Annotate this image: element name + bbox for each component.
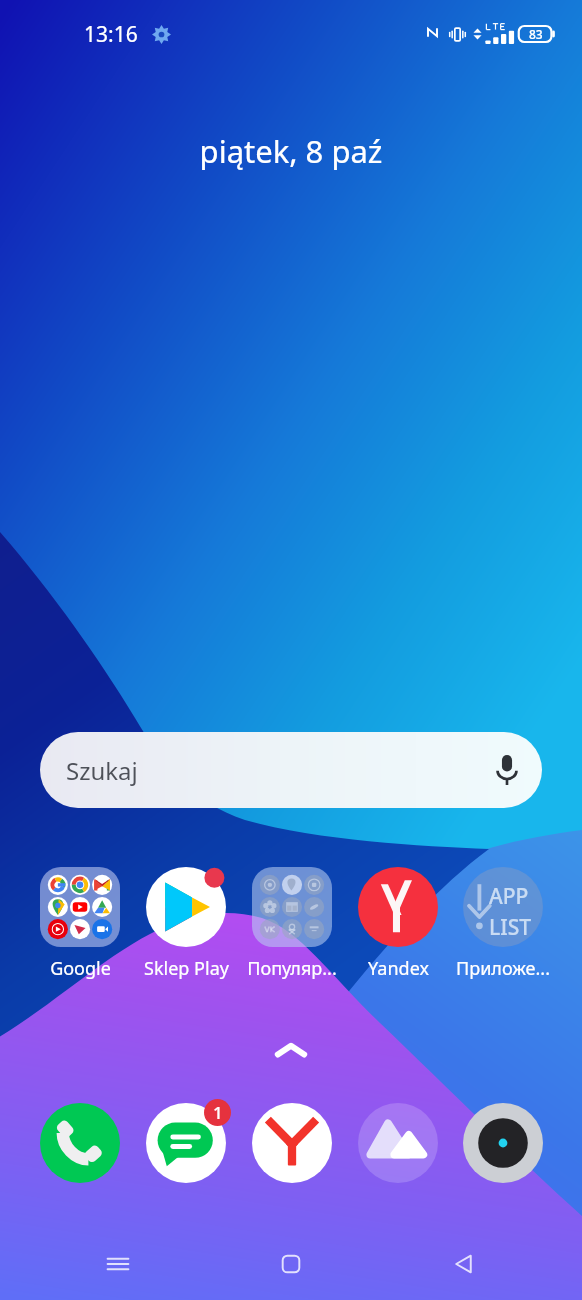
button[interactable]: Recents [63, 1234, 173, 1294]
staticText: 13:16 [84, 20, 138, 49]
staticText: Популяр... [247, 956, 337, 981]
button[interactable]: Yandex Browser [239, 1103, 345, 1183]
button[interactable]: Yandex [345, 867, 451, 981]
staticText: Приложе... [456, 956, 550, 981]
button[interactable]: Szukaj [40, 732, 542, 808]
button[interactable]: Open app drawer [0, 1032, 582, 1068]
staticText: Google [50, 956, 111, 981]
button[interactable]: APP [451, 867, 555, 981]
other: Voice search [496, 754, 518, 786]
staticText: Szukaj [66, 754, 138, 787]
button[interactable]: Популяр... [239, 867, 345, 981]
staticText: 1 [213, 1101, 223, 1124]
staticText: LIST [489, 913, 531, 942]
button[interactable]: Gallery [345, 1103, 451, 1183]
staticText: Sklep Play [144, 956, 229, 981]
button[interactable]: Camera [451, 1103, 555, 1183]
staticText: 83 [529, 26, 543, 42]
button[interactable]: Home [236, 1234, 346, 1294]
button[interactable]: Back [409, 1234, 519, 1294]
button[interactable]: Messages [133, 1103, 239, 1183]
staticText: piątek, 8 paź [0, 130, 582, 172]
button[interactable]: Google [27, 867, 133, 981]
staticText: APP [489, 882, 529, 911]
button[interactable]: Phone [27, 1103, 133, 1183]
staticText: Yandex [368, 956, 429, 981]
button[interactable]: Sklep Play [133, 867, 239, 981]
